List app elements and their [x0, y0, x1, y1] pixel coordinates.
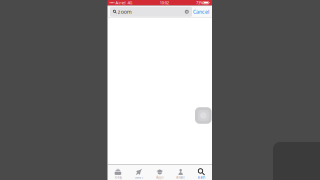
button[interactable]: Arcade — [170, 165, 191, 180]
button[interactable]: Search — [191, 165, 212, 180]
staticText: zoom — [118, 8, 132, 15]
staticText: Games — [135, 176, 143, 179]
button[interactable]: Cancel — [192, 7, 209, 17]
staticText: Arcade — [176, 176, 185, 179]
button[interactable]: Apps — [149, 165, 170, 180]
button[interactable]: Today — [107, 165, 128, 180]
staticText: 73% — [196, 0, 203, 5]
staticText: 10:02 — [160, 0, 169, 5]
staticText: Search — [197, 176, 205, 179]
staticText: Apps — [156, 176, 163, 179]
staticText: Today — [114, 176, 121, 179]
staticText: Cancel — [193, 8, 209, 15]
staticText: Airtel 4G — [114, 0, 132, 5]
button[interactable]: Games — [128, 165, 149, 180]
button[interactable]: AssistiveTouch — [195, 107, 212, 124]
